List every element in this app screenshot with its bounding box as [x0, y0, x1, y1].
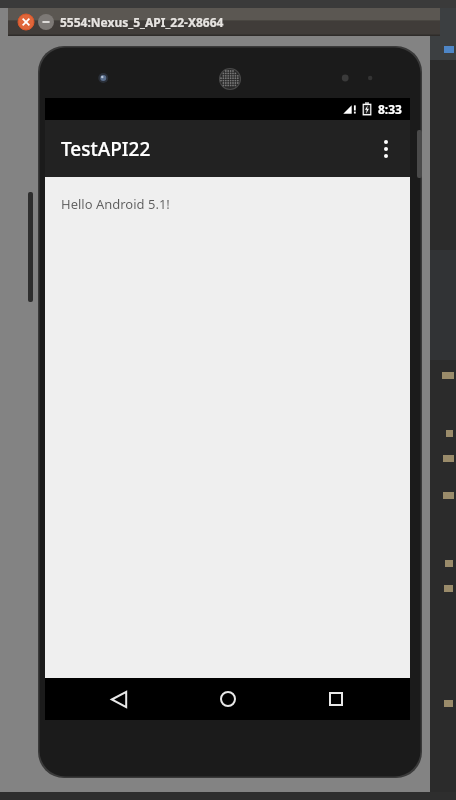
staticText: 8:33	[378, 101, 402, 117]
staticText: Hello Android 5.1!	[61, 195, 170, 213]
staticText: TestAPI22	[61, 136, 151, 162]
button[interactable]: Home	[193, 678, 263, 720]
button[interactable]: Close	[18, 14, 34, 30]
button[interactable]: Recent apps	[301, 678, 371, 720]
button[interactable]: Back	[84, 678, 154, 720]
button[interactable]: More options	[362, 125, 410, 173]
button[interactable]: Minimize	[38, 14, 54, 30]
staticText: 5554:Nexus_5_API_22-X8664	[60, 14, 224, 30]
